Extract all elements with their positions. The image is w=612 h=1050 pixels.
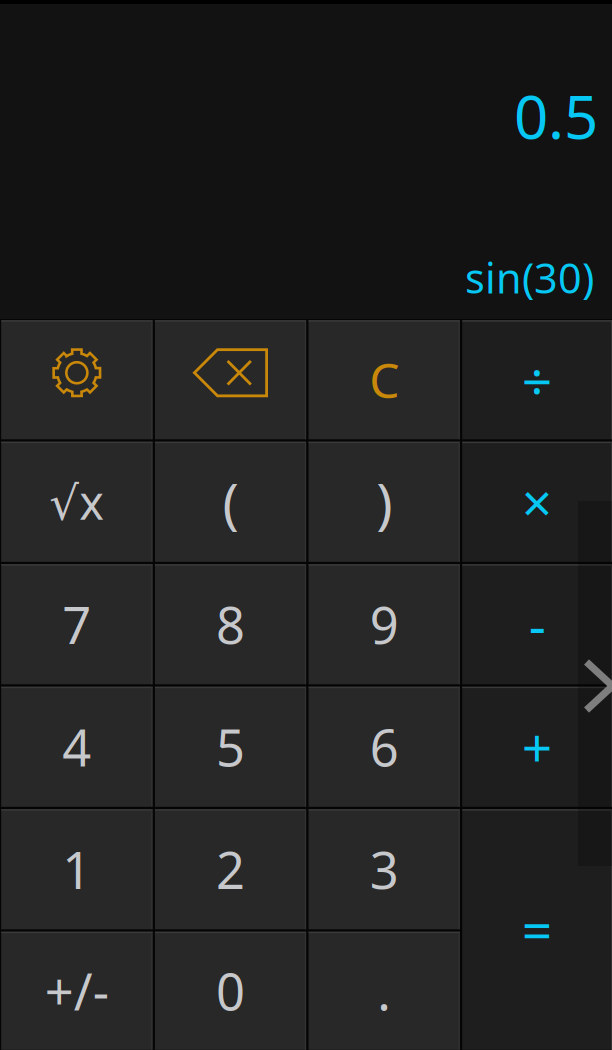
staticText: 2	[216, 836, 245, 903]
button[interactable]	[462, 320, 612, 439]
button[interactable]	[155, 932, 306, 1050]
staticText: 8	[216, 591, 245, 658]
button[interactable]	[155, 564, 306, 684]
staticText: ×	[522, 466, 553, 537]
staticText: ÷	[522, 344, 553, 415]
button[interactable]: Settings	[1, 320, 152, 439]
staticText: =	[522, 894, 553, 965]
button[interactable]	[1, 809, 152, 929]
staticText: +/-	[45, 957, 109, 1024]
staticText: 5	[216, 713, 245, 780]
staticText: 0	[216, 957, 245, 1024]
button[interactable]	[155, 442, 306, 562]
staticText: 9	[370, 591, 399, 658]
button[interactable]	[155, 809, 306, 929]
staticText: 6	[370, 713, 399, 780]
staticText: 0.5	[514, 76, 598, 156]
button[interactable]	[462, 564, 612, 684]
button[interactable]	[1, 687, 152, 807]
button[interactable]	[155, 687, 306, 807]
button[interactable]	[308, 687, 460, 807]
button[interactable]	[462, 442, 612, 562]
button[interactable]: Delete	[155, 320, 306, 439]
staticText: 7	[62, 591, 91, 658]
staticText: .	[377, 957, 391, 1024]
staticText: √x	[49, 471, 104, 533]
staticText: 3	[370, 836, 399, 903]
button[interactable]	[462, 687, 612, 807]
button[interactable]	[1, 564, 152, 684]
button[interactable]	[462, 809, 612, 1050]
staticText: sin(30)	[465, 250, 594, 305]
button[interactable]	[308, 809, 460, 929]
staticText: C	[369, 348, 399, 412]
button[interactable]: Show history	[578, 501, 612, 866]
button[interactable]	[1, 932, 152, 1050]
button[interactable]	[308, 564, 460, 684]
staticText: 4	[62, 713, 91, 780]
button[interactable]	[308, 442, 460, 562]
staticText: (	[222, 465, 238, 538]
button[interactable]	[1, 442, 152, 562]
button[interactable]	[308, 320, 460, 439]
staticText: +	[522, 711, 553, 782]
staticText: -	[529, 589, 546, 660]
button[interactable]	[308, 932, 460, 1050]
staticText: )	[376, 465, 392, 538]
staticText: 1	[62, 836, 91, 903]
